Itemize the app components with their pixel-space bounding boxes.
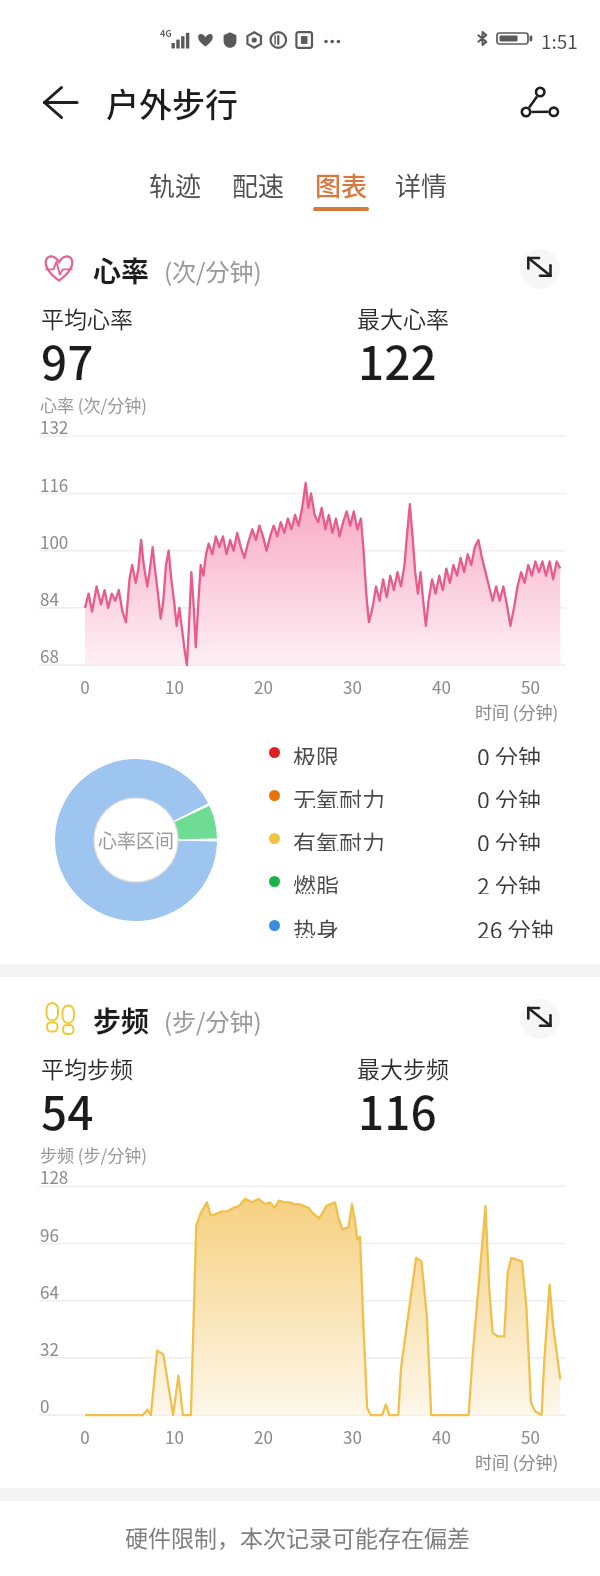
staticText: 10 <box>165 1424 184 1449</box>
staticText: 0 分钟 <box>477 782 541 808</box>
staticText: 户外步行 <box>106 79 238 127</box>
staticText: 详情 <box>395 166 448 204</box>
button[interactable]: Share <box>512 78 568 138</box>
staticText: 0 分钟 <box>477 739 541 765</box>
button[interactable]: 配速 <box>220 164 296 216</box>
staticText: 30 <box>343 1424 362 1449</box>
staticText: 0 分钟 <box>477 825 541 851</box>
staticText: 2 分钟 <box>477 868 541 894</box>
staticText: 平均步频 <box>41 1051 133 1084</box>
staticText: 97 <box>41 327 94 394</box>
staticText: 10 <box>165 674 184 699</box>
staticText: 0 <box>40 1393 50 1418</box>
staticText: 30 <box>343 674 362 699</box>
button[interactable]: 详情 <box>383 164 459 216</box>
staticText: 配速 <box>232 166 285 204</box>
staticText: 极限 <box>293 739 339 765</box>
staticText: 132 <box>40 414 69 439</box>
staticText: 54 <box>41 1077 94 1144</box>
staticText: 时间 (分钟) <box>475 1449 559 1474</box>
staticText: 燃脂 <box>293 868 339 894</box>
staticText: 40 <box>432 674 451 699</box>
button[interactable]: 图表 <box>303 164 379 216</box>
staticText: (次/分钟) <box>164 253 262 288</box>
staticText: 26 分钟 <box>477 912 554 938</box>
staticText: 最大步频 <box>357 1051 449 1084</box>
staticText: 20 <box>254 674 273 699</box>
button[interactable]: Expand <box>520 249 560 289</box>
staticText: 50 <box>521 1424 540 1449</box>
staticText: 步频 (步/分钟) <box>40 1142 147 1167</box>
staticText: 50 <box>521 674 540 699</box>
button[interactable]: 无氧耐力 <box>262 782 582 808</box>
staticText: 图表 <box>315 166 368 204</box>
staticText: 心率 <box>93 250 150 291</box>
staticText: 128 <box>40 1164 69 1189</box>
staticText: 步频 <box>93 1000 150 1041</box>
staticText: 116 <box>40 472 69 497</box>
button[interactable]: 极限 <box>262 739 582 765</box>
staticText: 轨迹 <box>149 166 202 204</box>
staticText: 0 <box>80 1424 90 1449</box>
staticText: 100 <box>40 529 69 554</box>
staticText: 时间 (分钟) <box>475 699 559 724</box>
button[interactable]: Back <box>30 77 90 139</box>
staticText: 40 <box>432 1424 451 1449</box>
staticText: 68 <box>40 643 59 668</box>
button[interactable]: 燃脂 <box>262 868 582 894</box>
staticText: 96 <box>40 1222 59 1247</box>
staticText: 平均心率 <box>41 301 133 334</box>
staticText: 4G <box>160 27 172 40</box>
staticText: 122 <box>358 327 437 394</box>
staticText: 无氧耐力 <box>293 782 385 808</box>
button[interactable]: 心率区间 <box>55 759 217 921</box>
staticText: 最大心率 <box>357 301 449 334</box>
staticText: 116 <box>358 1077 437 1144</box>
staticText: 32 <box>40 1336 59 1361</box>
button[interactable]: 热身 <box>262 912 582 938</box>
staticText: 20 <box>254 1424 273 1449</box>
staticText: (步/分钟) <box>164 1003 262 1038</box>
staticText: 心率区间 <box>98 826 175 854</box>
staticText: 64 <box>40 1279 59 1304</box>
staticText: 心率 (次/分钟) <box>40 392 147 417</box>
button[interactable]: 有氧耐力 <box>262 825 582 851</box>
staticText: 1:51 <box>541 27 578 55</box>
staticText: 硬件限制，本次记录可能存在偏差 <box>125 1520 470 1553</box>
staticText: 热身 <box>293 912 339 938</box>
staticText: 0 <box>80 674 90 699</box>
button[interactable]: 轨迹 <box>137 164 213 216</box>
button[interactable]: Expand <box>520 999 560 1039</box>
staticText: 84 <box>40 586 59 611</box>
staticText: 有氧耐力 <box>293 825 385 851</box>
